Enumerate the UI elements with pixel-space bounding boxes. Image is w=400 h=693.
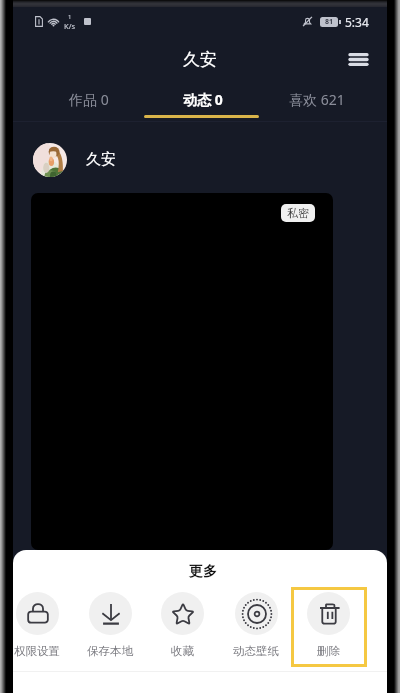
staticText: 喜欢 621 — [289, 90, 345, 109]
staticText: 删除 — [317, 644, 340, 658]
staticText: 私密 — [287, 206, 309, 220]
staticText: 作品 0 — [69, 90, 109, 109]
button[interactable]: Menu — [341, 42, 375, 76]
button[interactable]: 私密 — [281, 204, 315, 222]
staticText: 久安 — [183, 49, 217, 70]
button[interactable]: 作品 0 — [32, 82, 146, 122]
staticText: 保存本地 — [87, 644, 133, 658]
staticText: 收藏 — [171, 644, 194, 658]
staticText: 1 — [68, 13, 72, 21]
button[interactable]: 久安 — [33, 124, 387, 195]
button[interactable]: 动态壁纸 — [219, 587, 292, 667]
staticText: 5:34 — [345, 14, 369, 30]
button[interactable]: 保存本地 — [73, 587, 146, 667]
button[interactable]: 删除 — [292, 587, 365, 667]
button[interactable]: 动态 0 — [146, 82, 260, 122]
staticText: 久安 — [86, 150, 116, 169]
staticText: K/s — [64, 21, 76, 31]
staticText: 动态 0 — [183, 90, 223, 109]
staticText: 动态壁纸 — [233, 644, 279, 658]
button[interactable]: 收藏 — [146, 587, 219, 667]
staticText: 81 — [325, 17, 334, 27]
staticText: 权限设置 — [14, 644, 60, 658]
button[interactable]: 喜欢 621 — [260, 82, 374, 122]
staticText: 更多 — [16, 563, 387, 581]
button[interactable]: 权限设置 — [13, 587, 73, 667]
